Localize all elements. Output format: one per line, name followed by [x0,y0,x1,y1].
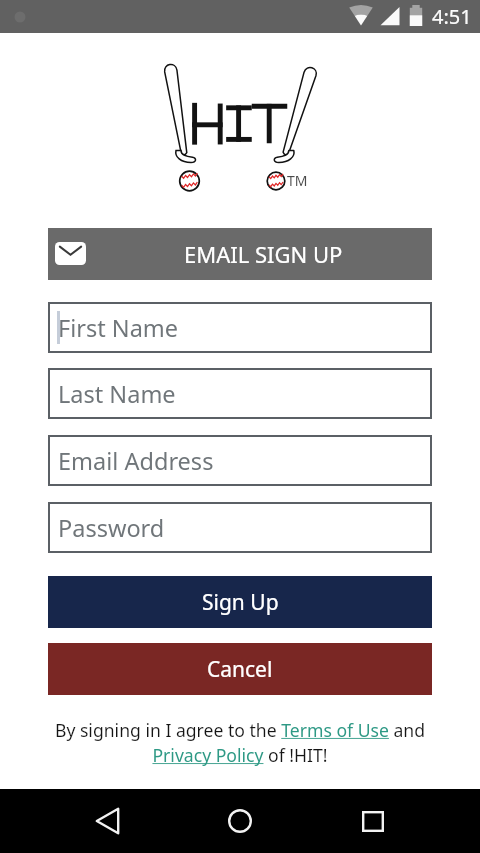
staticText: Password [58,512,165,544]
other: Email [55,242,86,265]
staticText: TM [287,171,308,190]
button[interactable]: Password [48,502,432,553]
button[interactable]: Sign Up [48,576,432,628]
button[interactable]: Back [75,789,139,853]
button[interactable]: By signing in I agree to the Terms of Us… [28,718,452,767]
staticText: Last Name [58,378,176,410]
button[interactable]: Recent apps [341,789,405,853]
button[interactable]: Last Name [48,368,432,419]
staticText: EMAIL SIGN UP [184,239,343,269]
button[interactable]: Home [208,789,272,853]
staticText: Sign Up [202,588,279,617]
staticText: Cancel [207,655,273,684]
staticText: Email Address [58,445,214,477]
button[interactable]: Email [48,228,432,280]
button[interactable]: Email Address [48,435,432,486]
staticText: 4:51 [432,3,472,30]
staticText: First Name [58,312,179,344]
button[interactable]: Cancel [48,643,432,695]
button[interactable]: First Name [48,302,432,353]
